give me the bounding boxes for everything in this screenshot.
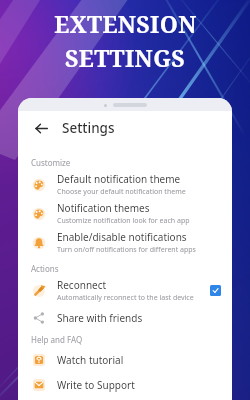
button[interactable]: Write to Support <box>18 372 232 397</box>
button[interactable]: Share with friends <box>18 305 232 330</box>
staticText: Reconnect <box>57 278 107 292</box>
button[interactable]: Reconnect <box>18 276 232 305</box>
staticText: Automatically reconnect to the last devi… <box>57 293 194 303</box>
staticText: Choose your default notification theme <box>57 187 186 197</box>
staticText: Turn on/off notifications for different … <box>57 245 196 255</box>
button[interactable]: Back <box>30 117 52 139</box>
staticText: Default notification theme <box>57 172 181 186</box>
staticText: Notification themes <box>57 201 150 215</box>
staticText: Share with friends <box>57 311 143 325</box>
button[interactable]: Watch tutorial <box>18 347 232 372</box>
button[interactable]: Default notification theme <box>18 170 232 199</box>
button[interactable]: Reconnect toggle <box>210 285 221 296</box>
staticText: Enable/disable notifications <box>57 230 187 244</box>
staticText: Settings <box>62 119 115 137</box>
staticText: Write to Support <box>57 378 135 392</box>
button[interactable]: Enable/disable notifications <box>18 228 232 257</box>
staticText: Watch tutorial <box>57 353 124 367</box>
staticText: Actions <box>31 263 59 274</box>
staticText: Customize notification look for each app <box>57 216 190 226</box>
staticText: Customize <box>31 157 71 168</box>
staticText: SETTINGS <box>65 42 185 73</box>
staticText: EXTENSION <box>54 8 197 39</box>
button[interactable]: Notification themes <box>18 199 232 228</box>
staticText: Help and FAQ <box>31 334 83 345</box>
